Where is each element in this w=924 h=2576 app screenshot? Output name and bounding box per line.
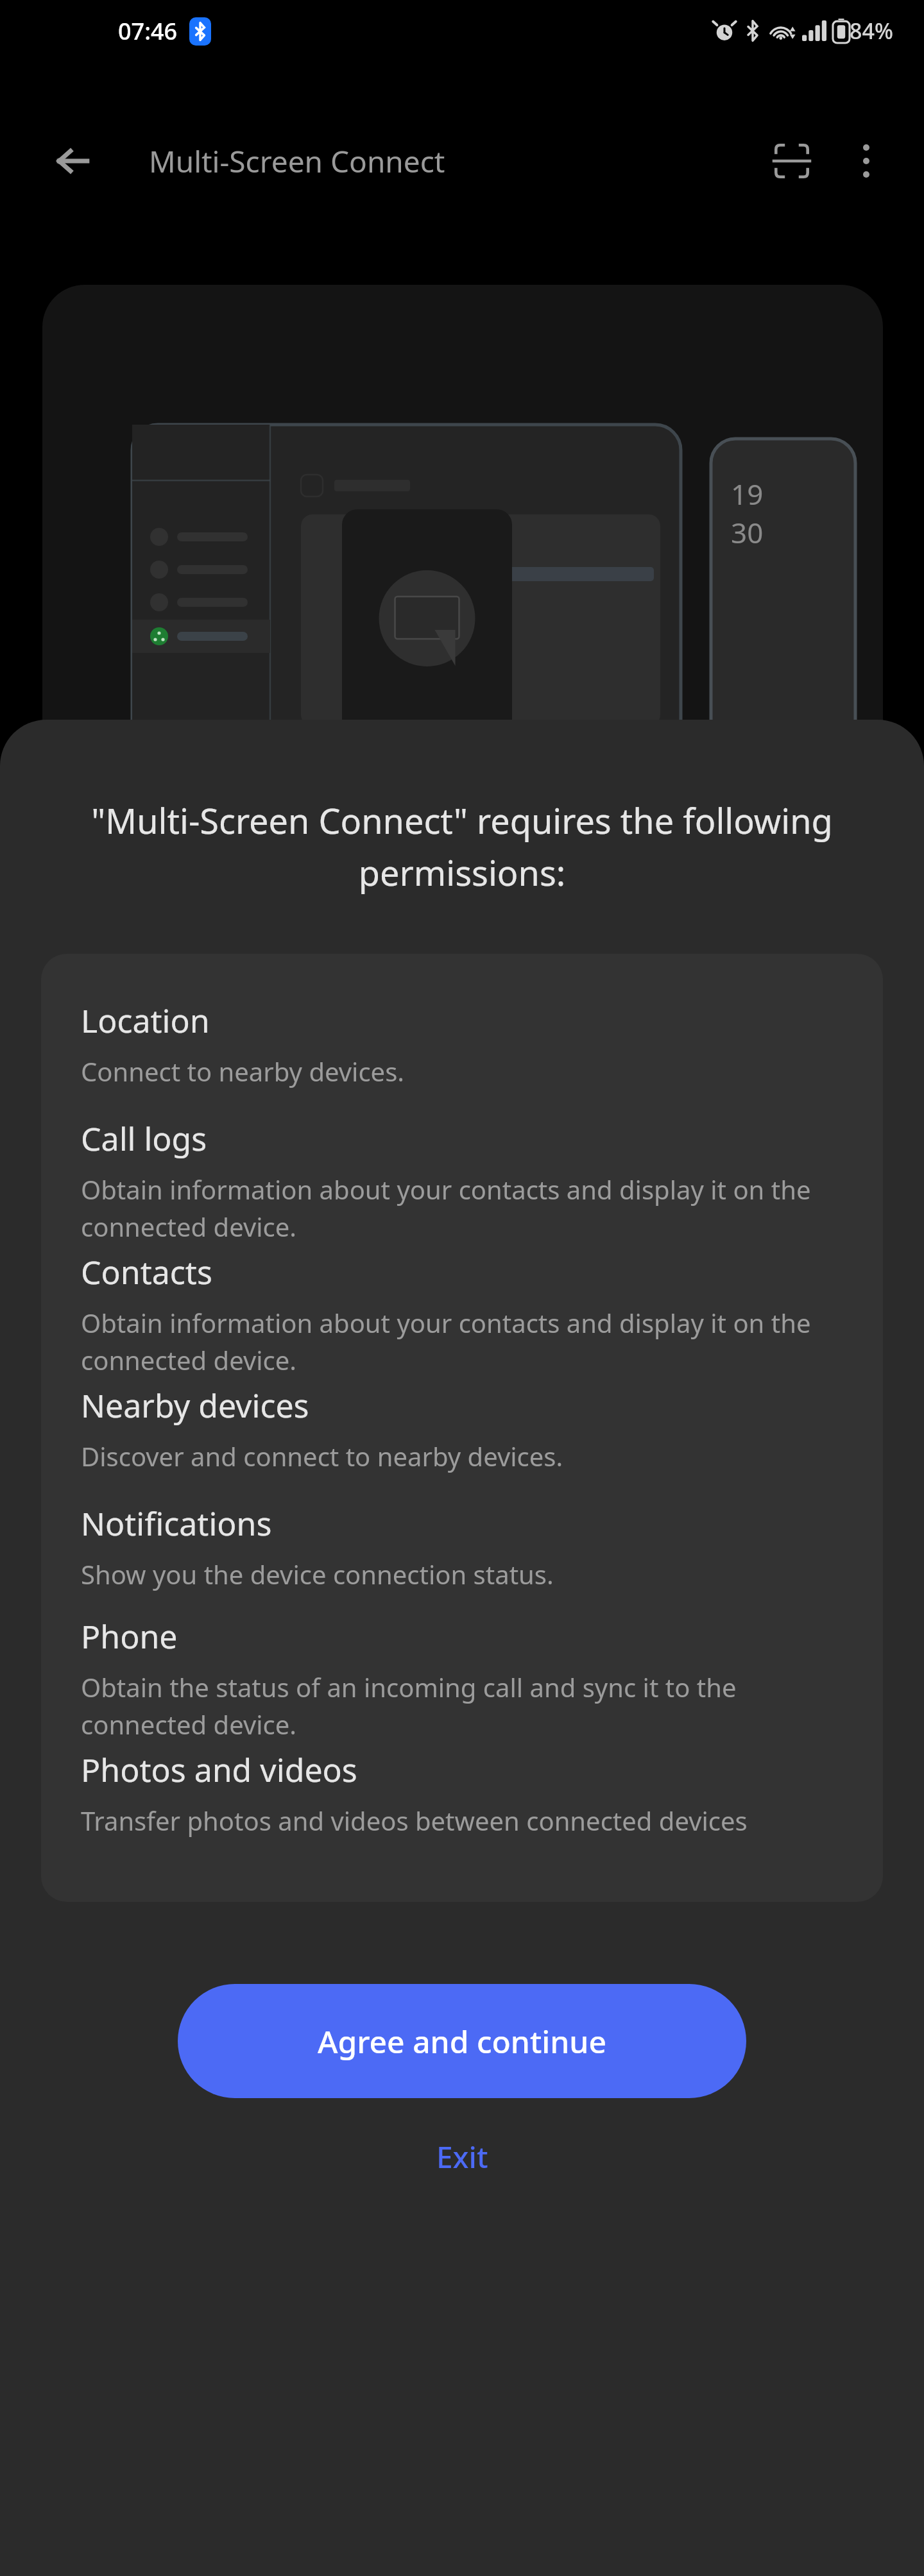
button[interactable]: Scan (762, 131, 821, 191)
staticText: Nearby devices (81, 1384, 309, 1427)
staticText: Transfer photos and videos between conne… (81, 1803, 748, 1838)
staticText: Multi-Screen Connect (149, 141, 445, 182)
staticText: Contacts (81, 1250, 212, 1294)
staticText: Call logs (81, 1117, 207, 1160)
staticText: Notifications (81, 1502, 272, 1545)
staticText: 07:46 (118, 15, 178, 47)
staticText: "Multi-Screen Connect" requires the foll… (74, 797, 850, 896)
button[interactable]: More options (837, 131, 896, 191)
button[interactable]: Agree and continue (178, 1984, 746, 2098)
staticText: Obtain the status of an incoming call an… (81, 1670, 850, 1741)
staticText: Connect to nearby devices. (81, 1054, 405, 1089)
staticText: Phone (81, 1614, 178, 1658)
staticText: Show you the device connection status. (81, 1557, 554, 1591)
staticText: Location (81, 999, 210, 1042)
staticText: Discover and connect to nearby devices. (81, 1439, 563, 1473)
staticText: Exit (436, 2137, 488, 2177)
staticText: Agree and continue (318, 2021, 607, 2062)
staticText: Obtain information about your contacts a… (81, 1305, 850, 1377)
staticText: 19 (731, 475, 764, 513)
staticText: Obtain information about your contacts a… (81, 1172, 850, 1244)
button[interactable]: Exit (398, 2120, 527, 2194)
staticText: 84% (850, 16, 893, 46)
staticText: 30 (731, 513, 764, 552)
staticText: Photos and videos (81, 1748, 357, 1792)
button[interactable]: Back (46, 134, 100, 188)
